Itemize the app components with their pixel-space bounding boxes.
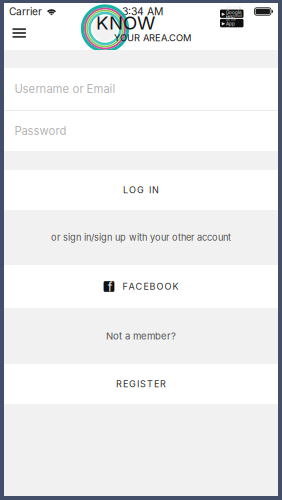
staticText: KNOW [96,11,155,34]
button[interactable]: Open menu [4,20,35,46]
staticText: Download on the [226,14,242,22]
staticText: f [108,279,113,294]
staticText: GET IT ON [226,7,241,10]
button[interactable]: R E G I S T E R [4,364,278,404]
staticText: 3:34 AM [122,5,163,18]
staticText: YOUR AREA.COM [114,32,191,43]
staticText: L O G I N [123,184,159,195]
staticText: Google Play [226,10,242,21]
staticText: Password [14,124,66,138]
staticText: Carrier [9,5,42,18]
staticText: ▸ [222,19,225,27]
button[interactable]: f [4,265,278,308]
staticText: Username or Email [14,82,115,96]
staticText: Not a member? [106,330,176,342]
staticText: App Store [226,21,238,32]
button[interactable]: L O G I N [4,170,278,210]
staticText: R E G I S T E R [116,378,166,389]
staticText: ▸ [222,10,225,18]
staticText: or sign in/sign up with your other accou… [51,232,231,243]
staticText: F A C E B O O K [122,281,178,292]
